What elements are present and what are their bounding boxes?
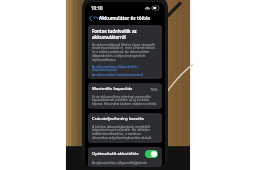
button[interactable]: Vissza	[88, 14, 106, 22]
button[interactable]: Maximális kapacitás	[92, 86, 158, 92]
staticText: Az akkumulátor karbantartásáról	[92, 72, 144, 76]
staticText: Az akkumulátorod főként olyan tényezők m…	[92, 42, 158, 62]
staticText: 10:10	[91, 5, 103, 11]
staticText: 76%	[150, 87, 158, 92]
button[interactable]: Optimalizált akkutöltés kapcsoló	[145, 150, 158, 158]
staticText: Az akkumulátor állapotáról és teljesítmé…	[92, 64, 158, 72]
staticText: Vissza	[93, 15, 105, 21]
staticText: Akkumulátor és töltés	[99, 15, 151, 21]
staticText: Az akkumulátor elhasználódásának csökken…	[92, 160, 158, 165]
staticText: Ez az akkumulátor jelenlegi maximális ka…	[92, 94, 158, 106]
staticText: Csúcsteljesítmény kezelés	[92, 116, 144, 122]
button[interactable]: Az akkumulátor állapotáról és teljesítmé…	[92, 64, 158, 72]
button[interactable]: Az akkumulátor karbantartásáról	[92, 72, 158, 76]
staticText: Maximális kapacitás	[92, 86, 150, 92]
staticText: Fontos tudnivalók az akkumulátorról	[92, 28, 158, 40]
staticText: Optimalizált akkutöltés	[92, 151, 145, 157]
button[interactable]: Optimalizált akkutöltés	[92, 150, 158, 158]
staticText: A telefon akkumulátorának megfelelő telj…	[92, 124, 158, 140]
